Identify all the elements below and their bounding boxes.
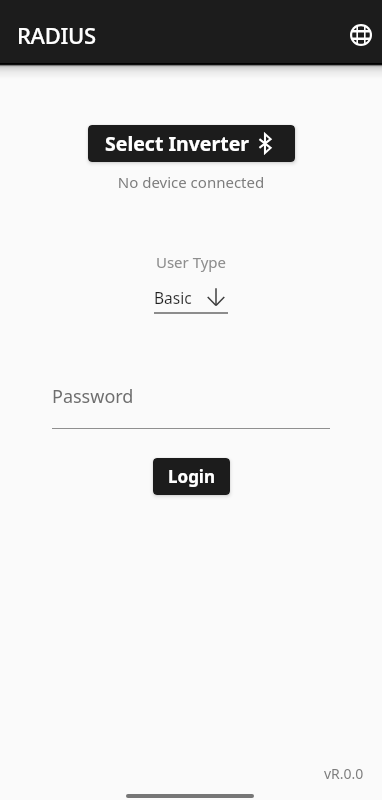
staticText: vR.0.0 [324,764,364,783]
staticText: Select Inverter [105,130,250,157]
staticText: Login [168,465,216,488]
button[interactable]: Login [153,458,230,495]
staticText: Basic [154,287,192,308]
staticText: Password [52,384,134,409]
staticText: No device connected [0,172,382,192]
button[interactable]: Password [52,384,330,429]
button[interactable]: Language [341,15,381,55]
staticText: RADIUS [17,20,96,50]
button[interactable]: Select Inverter [88,125,295,162]
button[interactable]: Basic [154,285,228,314]
staticText: User Type [0,252,382,272]
